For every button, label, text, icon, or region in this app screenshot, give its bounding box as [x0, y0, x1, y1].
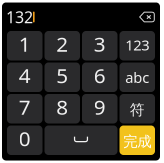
staticText: 符 [130, 100, 145, 119]
button[interactable]: 2 [44, 31, 80, 60]
staticText: 9 [94, 93, 106, 121]
button[interactable] [44, 125, 117, 155]
button[interactable]: abc [119, 62, 155, 92]
button[interactable]: 6 [82, 62, 117, 92]
staticText: 132 [6, 6, 33, 28]
staticText: 123 [125, 35, 149, 55]
button[interactable]: 符 [119, 94, 155, 123]
button[interactable]: 8 [44, 94, 80, 123]
staticText: 4 [19, 61, 31, 89]
staticText: 1 [19, 30, 31, 58]
button[interactable]: 完成 [119, 125, 155, 155]
staticText: 2 [56, 30, 68, 58]
staticText: abc [125, 67, 149, 87]
staticText: 6 [94, 61, 106, 89]
button[interactable]: 1 [7, 31, 42, 60]
staticText: 5 [56, 61, 68, 89]
staticText: 3 [94, 30, 106, 58]
button[interactable]: 9 [82, 94, 117, 123]
staticText: 完成 [123, 133, 151, 151]
button[interactable]: 123 [119, 31, 155, 60]
button[interactable]: Delete [134, 5, 160, 29]
button[interactable]: 0 [7, 125, 42, 155]
staticText: 0 [19, 124, 31, 152]
staticText: 8 [56, 93, 68, 121]
button[interactable]: 4 [7, 62, 42, 92]
button[interactable]: 7 [7, 94, 42, 123]
button[interactable]: 3 [82, 31, 117, 60]
staticText: 7 [19, 93, 31, 121]
button[interactable]: 5 [44, 62, 80, 92]
